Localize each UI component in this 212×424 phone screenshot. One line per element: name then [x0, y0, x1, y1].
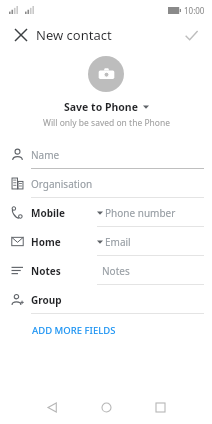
staticText: Mobile	[31, 206, 65, 220]
button[interactable]: Mobile	[0, 198, 212, 227]
staticText: Group	[31, 293, 62, 307]
staticText: 10:00	[184, 5, 205, 16]
staticText: Notes	[31, 264, 61, 278]
staticText: Home	[31, 235, 61, 249]
staticText: ADD MORE FIELDS	[32, 324, 116, 337]
button[interactable]: Save	[178, 22, 204, 48]
staticText: Organisation	[31, 177, 93, 191]
staticText: Name	[31, 148, 60, 162]
button[interactable]: Name	[0, 140, 212, 169]
staticText: Will only be saved on the Phone	[43, 117, 170, 129]
button[interactable]: Home	[86, 390, 126, 424]
button[interactable]: ADD MORE FIELDS	[31, 320, 117, 341]
staticText: Save to Phone	[64, 100, 138, 114]
button[interactable]: Organisation	[0, 169, 212, 198]
button[interactable]: Close	[8, 22, 34, 48]
staticText: Email	[105, 235, 131, 249]
button[interactable]: Save to Phone	[64, 100, 149, 114]
button[interactable]: Recent apps	[140, 390, 180, 424]
button[interactable]: Group	[0, 285, 212, 314]
button[interactable]: Add photo	[88, 56, 124, 92]
staticText: New contact	[36, 26, 112, 44]
staticText: Phone number	[105, 206, 176, 220]
button[interactable]: Home	[0, 227, 212, 256]
button[interactable]: Notes	[0, 256, 212, 285]
staticText: Notes	[102, 264, 130, 278]
button[interactable]: Back	[32, 390, 72, 424]
